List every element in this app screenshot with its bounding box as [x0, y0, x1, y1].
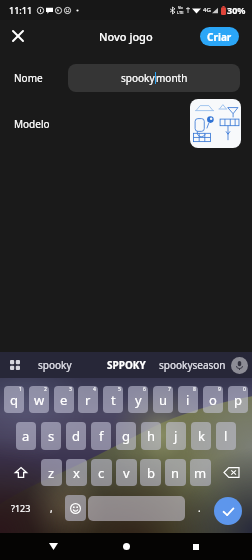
button[interactable]: Shift [4, 459, 38, 486]
staticText: Vo [178, 5, 183, 10]
staticText: ?123 [11, 502, 31, 514]
button[interactable]: g [116, 422, 136, 450]
staticText: g [122, 427, 130, 445]
button[interactable]: x [66, 459, 87, 486]
button[interactable]: . [188, 495, 210, 521]
staticText: h [147, 427, 156, 445]
staticText: 3 [69, 386, 72, 393]
staticText: o [209, 391, 217, 409]
staticText: 30% [227, 4, 246, 16]
staticText: 8 [193, 386, 196, 393]
button[interactable]: Emoji [65, 495, 86, 521]
staticText: 11:11 [9, 4, 33, 16]
staticText: k [198, 427, 205, 445]
button[interactable]: y [128, 386, 148, 413]
button[interactable]: h [141, 422, 161, 450]
staticText: 7 [168, 386, 171, 393]
button[interactable]: spooky [68, 64, 240, 92]
staticText: c [98, 464, 105, 482]
button[interactable]: spooky [38, 352, 72, 378]
button[interactable]: SPPOKY [107, 352, 146, 378]
button[interactable]: , [40, 495, 62, 521]
staticText: spooky [121, 71, 155, 85]
staticText: r [85, 391, 91, 409]
staticText: 5 [118, 386, 121, 393]
button[interactable]: p [228, 386, 248, 413]
button[interactable]: r [78, 386, 98, 413]
staticText: w [34, 391, 45, 409]
staticText: 4G [203, 6, 211, 14]
button[interactable]: z [41, 459, 62, 486]
button[interactable]: l [216, 422, 236, 450]
button[interactable]: t [103, 386, 123, 413]
button[interactable]: v [116, 459, 137, 486]
button[interactable]: Back [40, 533, 66, 560]
staticText: , [50, 501, 53, 515]
button[interactable]: b [140, 459, 161, 486]
button[interactable]: o [203, 386, 223, 413]
button[interactable]: spookyseason [159, 352, 226, 378]
staticText: 4 [93, 386, 96, 393]
button[interactable]: Space [88, 496, 185, 521]
button[interactable]: Criar [200, 27, 239, 46]
button[interactable]: d [66, 422, 86, 450]
staticText: Novo jogo [99, 29, 153, 44]
staticText: q [10, 391, 18, 409]
button[interactable]: q [4, 386, 24, 413]
staticText: e [60, 391, 68, 409]
button[interactable]: Enter [214, 497, 242, 525]
staticText: u [159, 391, 168, 409]
staticText: i [186, 391, 190, 409]
staticText: z [48, 464, 55, 482]
staticText: LTE [177, 10, 184, 15]
staticText: spookyseason [159, 358, 226, 372]
staticText: n [171, 464, 180, 482]
button[interactable]: Keyboard tools [7, 357, 23, 373]
staticText: Criar [207, 30, 232, 44]
button[interactable]: j [166, 422, 186, 450]
staticText: b [147, 464, 155, 482]
staticText: d [72, 427, 80, 445]
staticText: l [224, 427, 228, 445]
staticText: 2 [44, 386, 47, 393]
staticText: a [22, 427, 30, 445]
button[interactable]: a [16, 422, 36, 450]
button[interactable]: m [190, 459, 211, 486]
button[interactable]: Backspace [214, 459, 248, 486]
staticText: p [234, 391, 242, 409]
button[interactable]: n [165, 459, 186, 486]
staticText: f [99, 427, 104, 445]
staticText: 6 [143, 386, 146, 393]
staticText: v [123, 464, 130, 482]
button[interactable]: s [41, 422, 61, 450]
staticText: 0 [243, 386, 246, 393]
staticText: . [198, 501, 201, 515]
staticText: Nome [14, 71, 43, 85]
staticText: y [135, 391, 142, 409]
button[interactable]: Voice input [231, 357, 248, 374]
button[interactable]: c [91, 459, 112, 486]
staticText: 1 [19, 386, 22, 393]
staticText: s [48, 427, 55, 445]
staticText: t [111, 391, 116, 409]
staticText: Modelo [14, 117, 50, 131]
staticText: x [73, 464, 80, 482]
button[interactable]: e [54, 386, 74, 413]
staticText: 9 [218, 386, 221, 393]
staticText: spooky [38, 358, 72, 372]
button[interactable]: w [29, 386, 49, 413]
staticText: j [174, 427, 178, 445]
button[interactable]: Recents [183, 533, 209, 560]
button[interactable]: ?123 [2, 495, 40, 521]
staticText: m [194, 464, 207, 482]
button[interactable]: Home [113, 533, 139, 560]
button[interactable]: k [191, 422, 211, 450]
button[interactable]: Close [6, 24, 30, 48]
button[interactable]: f [91, 422, 111, 450]
button[interactable]: i [178, 386, 198, 413]
staticText: SPPOKY [107, 358, 146, 372]
button[interactable]: u [153, 386, 173, 413]
staticText: month [156, 71, 188, 85]
button[interactable]: Template preview [190, 99, 241, 148]
